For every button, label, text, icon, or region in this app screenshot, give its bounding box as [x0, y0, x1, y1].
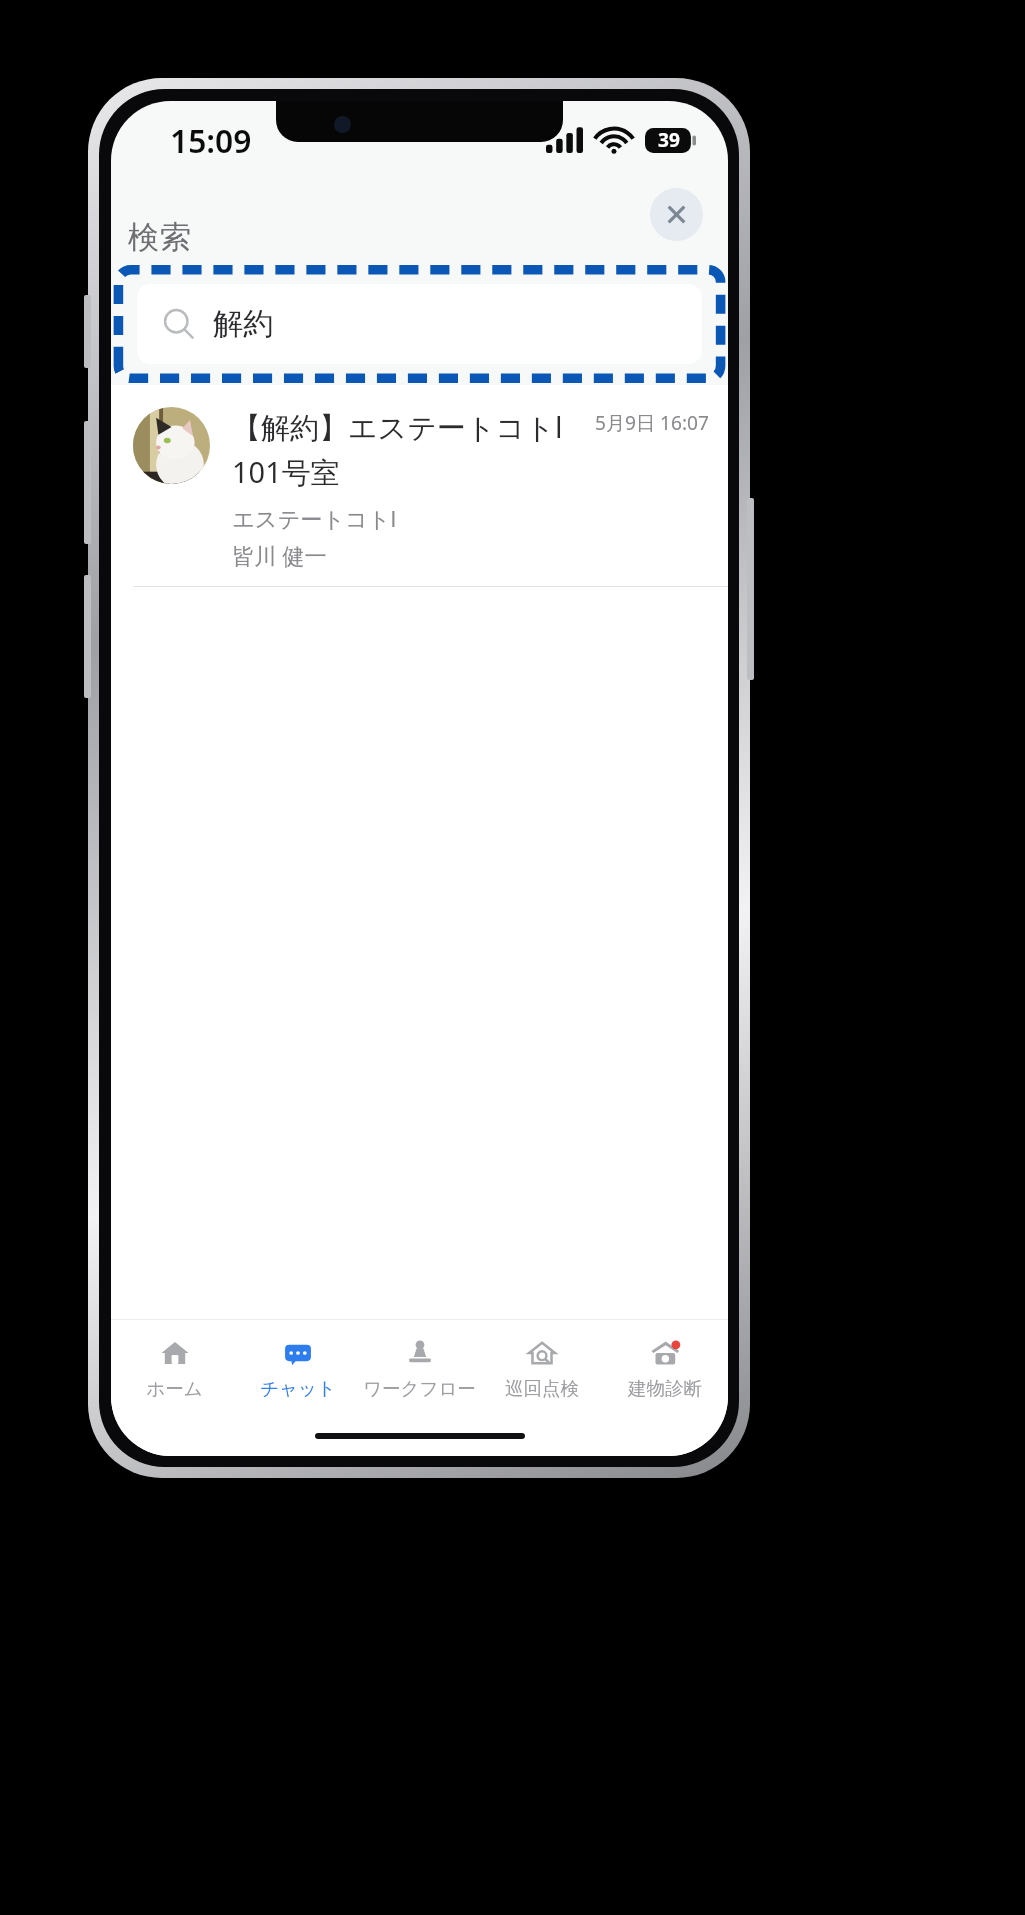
- button[interactable]: 巡回点検: [483, 1320, 600, 1415]
- staticText: 5月9日 16:07: [595, 410, 709, 436]
- staticText: 検索: [128, 218, 191, 258]
- button[interactable]: Close: [650, 188, 703, 241]
- staticText: 【解約】エステートコトl: [232, 407, 563, 447]
- staticText: チャット: [260, 1377, 336, 1400]
- button[interactable]: ワークフロー: [361, 1320, 478, 1415]
- staticText: ホーム: [146, 1377, 203, 1400]
- staticText: 皆川 健一: [232, 540, 327, 570]
- staticText: 101号室: [232, 452, 340, 492]
- staticText: 解約: [213, 305, 274, 343]
- button[interactable]: 解約: [137, 284, 702, 364]
- button[interactable]: 建物診断: [606, 1320, 723, 1415]
- staticText: エステートコトl: [232, 503, 397, 533]
- staticText: 巡回点検: [505, 1377, 579, 1400]
- staticText: 建物診断: [628, 1377, 702, 1400]
- button[interactable]: ホーム: [116, 1320, 233, 1415]
- staticText: 15:09: [170, 119, 252, 162]
- button[interactable]: 【解約】エステートコトl: [111, 385, 728, 587]
- button[interactable]: チャット: [239, 1320, 356, 1415]
- staticText: ワークフロー: [363, 1377, 476, 1400]
- staticText: 39: [658, 127, 680, 153]
